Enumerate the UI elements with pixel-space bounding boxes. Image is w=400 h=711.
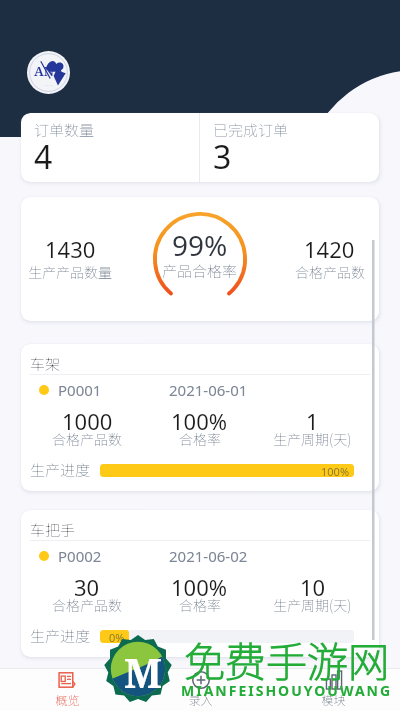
staticText: 生产产品数量 xyxy=(28,262,112,282)
staticText: 100% xyxy=(171,406,228,436)
staticText: 99% xyxy=(172,226,228,264)
button[interactable]: 订单数量 xyxy=(21,113,199,182)
button[interactable]: 录入 xyxy=(134,668,267,711)
staticText: 合格产品数 xyxy=(52,429,122,449)
staticText: 订单数量 xyxy=(34,119,95,141)
staticText: 1 xyxy=(306,406,319,436)
staticText: ANA xyxy=(34,62,64,80)
staticText: 2021-06-01 xyxy=(169,380,248,400)
staticText: 生产进度 xyxy=(30,625,91,647)
staticText: 1420 xyxy=(304,234,355,264)
staticText: 3 xyxy=(213,135,232,176)
staticText: P0002 xyxy=(58,546,102,566)
staticText: 合格产品数 xyxy=(295,262,365,282)
staticText: M xyxy=(124,645,163,699)
staticText: 录入 xyxy=(188,691,213,708)
staticText: 生产周期(天) xyxy=(273,595,352,615)
staticText: 产品合格率 xyxy=(162,260,238,282)
staticText: 1430 xyxy=(45,234,96,264)
staticText: 4 xyxy=(34,135,53,176)
staticText: 已完成订单 xyxy=(213,119,289,141)
staticText: 100% xyxy=(171,572,228,602)
button[interactable]: 已完成订单 xyxy=(200,113,379,182)
staticText: 车架 xyxy=(30,353,61,375)
button[interactable]: 车架 xyxy=(21,344,379,491)
button[interactable]: 模块 xyxy=(267,668,400,711)
staticText: 100% xyxy=(321,464,350,477)
staticText: ＿＿ xyxy=(44,80,54,86)
staticText: 合格率 xyxy=(179,595,221,615)
staticText: 模块 xyxy=(321,691,346,708)
staticText: 合格率 xyxy=(179,429,221,449)
staticText: 概览 xyxy=(55,691,80,708)
button[interactable]: 车把手 xyxy=(21,510,379,657)
staticText: 2021-06-02 xyxy=(169,546,248,566)
staticText: 合格产品数 xyxy=(52,595,122,615)
staticText: 车把手 xyxy=(30,519,76,541)
staticText: P0001 xyxy=(58,380,102,400)
staticText: 生产周期(天) xyxy=(273,429,352,449)
staticText: 10 xyxy=(300,572,326,602)
staticText: 30 xyxy=(74,572,100,602)
staticText: 1000 xyxy=(62,406,113,436)
staticText: 免费手游网 xyxy=(184,629,389,688)
button[interactable]: Logo xyxy=(27,51,70,94)
staticText: 0% xyxy=(109,630,125,643)
staticText: MIANFEISHOUYOUWANG xyxy=(181,681,393,700)
staticText: 生产进度 xyxy=(30,459,91,481)
button[interactable]: 概览 xyxy=(0,668,134,711)
